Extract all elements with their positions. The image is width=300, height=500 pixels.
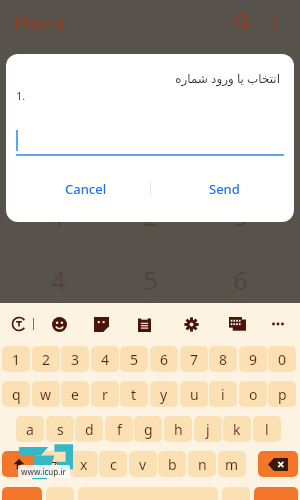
staticText: 4 <box>51 262 66 297</box>
button[interactable]: d <box>75 416 103 442</box>
staticText: a <box>26 420 34 439</box>
staticText: 3 <box>71 350 80 369</box>
staticText: t <box>131 385 137 404</box>
button[interactable]: 8 <box>209 346 237 372</box>
staticText: r <box>102 385 108 404</box>
staticText: k <box>233 420 241 439</box>
staticText: 6 <box>160 350 169 369</box>
button[interactable]: Send <box>178 172 270 206</box>
staticText: 1 <box>51 198 66 233</box>
button[interactable]: 5 <box>120 346 148 372</box>
button[interactable]: i <box>209 381 237 407</box>
button[interactable] <box>16 124 284 156</box>
staticText: Phone <box>14 11 66 34</box>
button[interactable]: m <box>218 451 246 477</box>
button[interactable]: Cancel <box>40 172 132 206</box>
button[interactable]: Symbols <box>2 487 42 500</box>
staticText: 9 <box>249 350 258 369</box>
button[interactable]: k <box>223 416 251 442</box>
staticText: i <box>221 385 225 404</box>
staticText: 1. <box>16 88 26 103</box>
button[interactable]: u <box>180 381 208 407</box>
button[interactable]: g <box>134 416 162 442</box>
button[interactable]: More <box>265 311 291 337</box>
button[interactable]: h <box>164 416 192 442</box>
button[interactable]: t <box>120 381 148 407</box>
button[interactable]: 1 <box>2 346 30 372</box>
staticText: q <box>12 385 21 404</box>
staticText: MNO <box>229 290 252 302</box>
button[interactable]: r <box>91 381 119 407</box>
staticText: n <box>198 455 207 474</box>
staticText: Cancel <box>65 180 107 198</box>
button[interactable]: 7 <box>180 346 208 372</box>
staticText: z <box>51 455 58 474</box>
button[interactable]: y <box>150 381 178 407</box>
staticText: DEF <box>232 226 249 238</box>
staticText: s <box>57 420 64 439</box>
staticText: l <box>265 420 269 439</box>
button[interactable]: Search <box>228 8 256 36</box>
button[interactable]: Backspace <box>258 451 298 477</box>
staticText: x <box>80 455 88 474</box>
staticText: 3 <box>233 198 248 233</box>
staticText: 0 <box>278 350 287 369</box>
staticText: u <box>190 385 199 404</box>
button[interactable]: c <box>99 451 127 477</box>
staticText: 1 <box>12 350 21 369</box>
staticText: GHI <box>50 290 67 302</box>
button[interactable]: 3 <box>61 346 89 372</box>
button[interactable] <box>46 487 74 500</box>
staticText: 2 <box>143 198 158 233</box>
staticText: h <box>174 420 183 439</box>
staticText: g <box>144 420 153 439</box>
button[interactable]: e <box>61 381 89 407</box>
button[interactable]: Emoji <box>46 311 72 337</box>
button[interactable]: Settings <box>178 311 204 337</box>
button[interactable]: Enter <box>254 487 298 500</box>
staticText: Send <box>209 180 240 198</box>
button[interactable]: a <box>16 416 44 442</box>
button[interactable]: Space <box>78 487 218 500</box>
staticText: انتخاب یا ورود شماره <box>6 70 280 86</box>
staticText: y <box>160 385 168 404</box>
button[interactable]: Change language <box>6 311 32 337</box>
button[interactable]: q <box>2 381 30 407</box>
button[interactable]: b <box>158 451 186 477</box>
button[interactable]: z <box>40 451 68 477</box>
staticText: 5 <box>130 350 139 369</box>
button[interactable]: l <box>253 416 281 442</box>
staticText: j <box>206 420 210 439</box>
button[interactable]: s <box>46 416 74 442</box>
button[interactable]: f <box>105 416 133 442</box>
button[interactable]: Clipboard <box>131 311 157 337</box>
button[interactable]: 2 <box>32 346 60 372</box>
staticText: ABC <box>141 226 159 238</box>
button[interactable]: o <box>239 381 267 407</box>
staticText: e <box>71 385 79 404</box>
button[interactable]: 0 <box>268 346 296 372</box>
button[interactable]: Stickers <box>88 311 114 337</box>
staticText: 4 <box>101 350 110 369</box>
staticText: 5 <box>143 262 158 297</box>
staticText: 2 <box>42 350 51 369</box>
staticText: v <box>139 455 147 474</box>
staticText: p <box>278 385 287 404</box>
button[interactable]: w <box>32 381 60 407</box>
staticText: f <box>117 420 122 439</box>
button[interactable]: j <box>194 416 222 442</box>
button[interactable] <box>222 487 250 500</box>
button[interactable]: v <box>129 451 157 477</box>
button[interactable]: 9 <box>239 346 267 372</box>
button[interactable]: n <box>188 451 216 477</box>
button[interactable]: x <box>70 451 98 477</box>
staticText: w <box>40 385 52 404</box>
button[interactable]: 4 <box>91 346 119 372</box>
button[interactable]: 6 <box>150 346 178 372</box>
button[interactable]: More options <box>262 9 288 35</box>
button[interactable]: p <box>268 381 296 407</box>
button[interactable]: Switch keyboard <box>224 311 250 337</box>
button[interactable]: Shift <box>2 451 36 477</box>
staticText: 7 <box>190 350 199 369</box>
